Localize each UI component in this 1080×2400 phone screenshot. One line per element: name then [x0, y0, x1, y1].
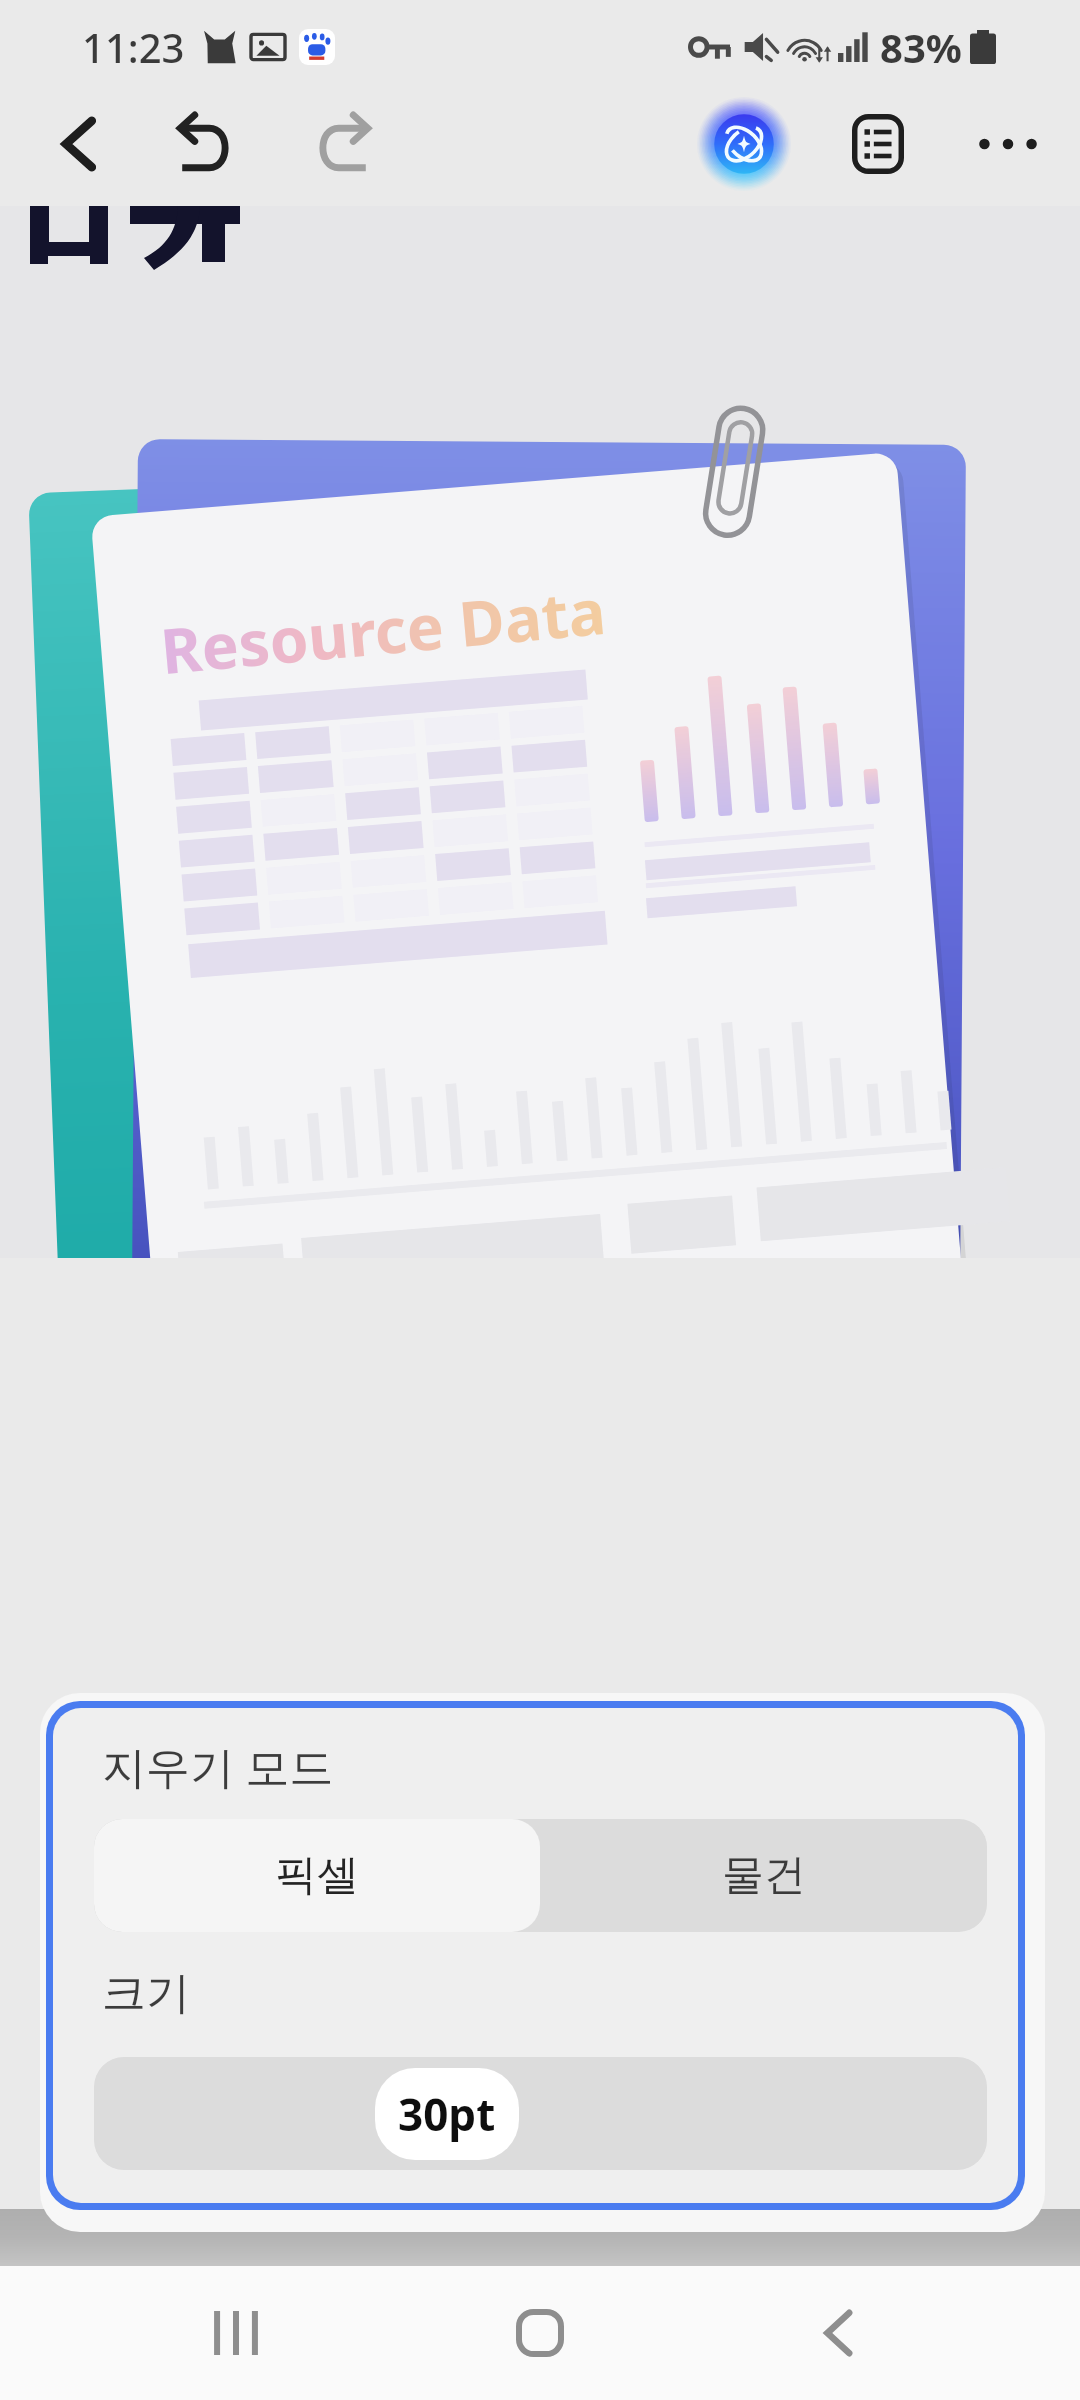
staticText: 지우기 모드: [102, 1736, 334, 1796]
button[interactable]: Recent apps: [136, 2266, 336, 2400]
button[interactable]: Home: [440, 2266, 640, 2400]
staticText: 11:23: [82, 20, 185, 74]
button[interactable]: 30pt: [375, 2068, 519, 2160]
button[interactable]: Undo: [152, 92, 256, 196]
button[interactable]: 픽셀: [94, 1819, 540, 1932]
staticText: 물건: [722, 1849, 806, 1902]
button[interactable]: [94, 2057, 987, 2170]
staticText: 30pt: [398, 2084, 496, 2144]
staticText: 픽셀: [275, 1849, 359, 1902]
staticText: 83%: [880, 20, 962, 74]
button[interactable]: Layers: [826, 92, 930, 196]
staticText: 크기: [102, 1966, 190, 2021]
button[interactable]: AI assist: [692, 92, 796, 196]
button[interactable]: More options: [956, 92, 1060, 196]
button[interactable]: Back: [738, 2266, 938, 2400]
button[interactable]: Redo: [292, 92, 396, 196]
button[interactable]: Back: [28, 92, 132, 196]
staticText: Resource Data: [157, 568, 610, 692]
button[interactable]: 물건: [540, 1819, 987, 1932]
